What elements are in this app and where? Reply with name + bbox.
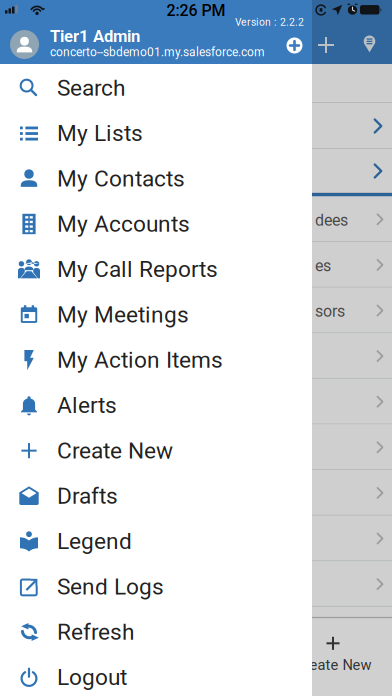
staticText: Refresh	[57, 619, 134, 645]
button[interactable]: My Contacts	[0, 156, 312, 201]
button[interactable]: Item	[0, 64, 392, 103]
staticText: Version : 2.2.2	[235, 16, 304, 28]
button[interactable]: Send Logs	[0, 564, 312, 609]
staticText: dees	[315, 211, 348, 230]
staticText: My Lists	[57, 120, 143, 147]
staticText: My Meetings	[57, 301, 189, 328]
button[interactable]: Alerts	[0, 383, 312, 428]
staticText: Logout	[57, 664, 127, 691]
button[interactable]: Item	[0, 470, 392, 516]
button[interactable]: Item	[0, 103, 392, 149]
button[interactable]: sors	[0, 288, 392, 333]
button[interactable]: Item	[0, 516, 392, 561]
staticText: Tier1 Admin	[50, 26, 140, 46]
button[interactable]: My Meetings	[0, 292, 312, 337]
button[interactable]: Map	[363, 35, 375, 52]
staticText: Search	[57, 75, 125, 101]
button[interactable]: Create New	[0, 428, 312, 473]
staticText: concerto--sbdemo01.my.salesforce.com	[50, 45, 265, 59]
button[interactable]: Add	[317, 36, 334, 53]
button[interactable]: My Call Reports	[0, 247, 312, 292]
button[interactable]: My Lists	[0, 111, 312, 156]
staticText: My Call Reports	[57, 256, 218, 283]
button[interactable]: My Accounts	[0, 201, 312, 247]
button[interactable]: Add account	[286, 37, 302, 53]
button[interactable]: Create New	[294, 636, 371, 673]
button[interactable]: Legend	[0, 519, 312, 564]
staticText: es	[315, 256, 331, 275]
staticText: Create New	[57, 437, 173, 464]
button[interactable]: Item	[0, 333, 392, 379]
staticText: My Contacts	[57, 165, 185, 192]
staticText: Drafts	[57, 483, 118, 509]
staticText: Send Logs	[57, 573, 164, 600]
staticText: Legend	[57, 528, 132, 555]
staticText: My Accounts	[57, 211, 190, 237]
staticText: Alerts	[57, 392, 117, 419]
staticText: Create New	[294, 656, 371, 673]
button[interactable]: Logout	[0, 655, 312, 696]
staticText: 2:26 PM	[166, 1, 225, 20]
button[interactable]: Drafts	[0, 473, 312, 519]
button[interactable]: Item	[0, 561, 392, 607]
button[interactable]: dees	[0, 196, 392, 242]
staticText: sors	[315, 302, 345, 321]
button[interactable]: Item	[0, 424, 392, 470]
button[interactable]: My Action Items	[0, 337, 312, 383]
button[interactable]: Refresh	[0, 609, 312, 655]
staticText: My Action Items	[57, 347, 223, 373]
button[interactable]: Item	[0, 149, 392, 193]
button[interactable]: es	[0, 242, 392, 288]
button[interactable]: Search	[0, 65, 312, 111]
button[interactable]: Item	[0, 379, 392, 424]
